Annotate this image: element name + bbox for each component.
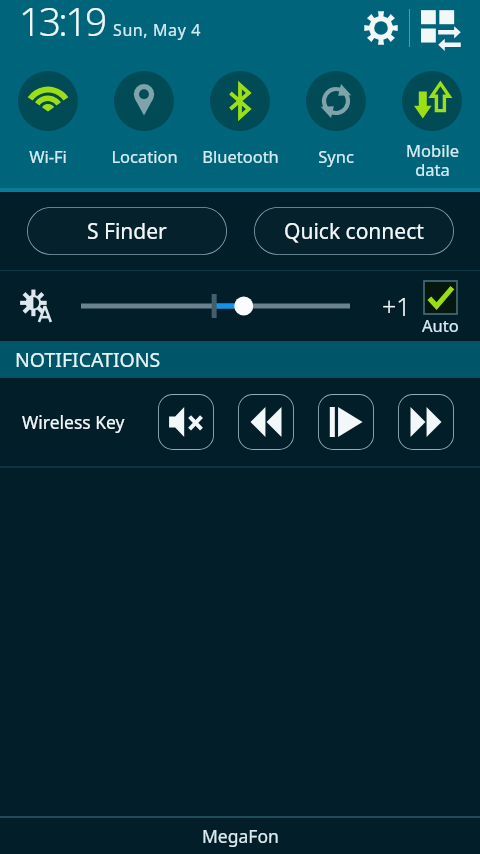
staticText: Quick connect bbox=[284, 217, 424, 246]
staticText: Auto bbox=[422, 314, 459, 336]
button[interactable]: Quick connect bbox=[254, 207, 454, 255]
button[interactable]: Wi-Fi bbox=[0, 71, 96, 167]
button[interactable]: Play bbox=[318, 394, 374, 450]
button[interactable]: Mute bbox=[158, 394, 214, 450]
button[interactable]: Edit quick settings bbox=[416, 4, 464, 52]
staticText: Mobile data bbox=[406, 139, 459, 181]
button[interactable]: Location bbox=[96, 71, 192, 167]
staticText: 13:19 bbox=[19, 0, 105, 47]
staticText: Sync bbox=[318, 145, 354, 167]
staticText: Location bbox=[111, 145, 178, 167]
staticText: MegaFon bbox=[202, 824, 279, 848]
staticText: NOTIFICATIONS bbox=[15, 346, 161, 373]
button[interactable]: Settings bbox=[357, 4, 405, 52]
staticText: Wireless Key bbox=[22, 410, 125, 434]
staticText: Sun, May 4 bbox=[113, 19, 201, 41]
button[interactable]: Mobile data bbox=[384, 71, 480, 187]
button[interactable]: Auto bbox=[414, 279, 471, 334]
staticText: S Finder bbox=[87, 217, 167, 246]
button[interactable]: Previous bbox=[238, 394, 294, 450]
button[interactable]: S Finder bbox=[27, 207, 227, 255]
button[interactable]: Next bbox=[398, 394, 454, 450]
staticText: +1 bbox=[382, 289, 411, 323]
staticText: Bluetooth bbox=[202, 145, 279, 167]
button[interactable]: Bluetooth bbox=[192, 71, 288, 167]
button[interactable]: Sync bbox=[288, 71, 384, 167]
staticText: Wi-Fi bbox=[29, 145, 67, 167]
